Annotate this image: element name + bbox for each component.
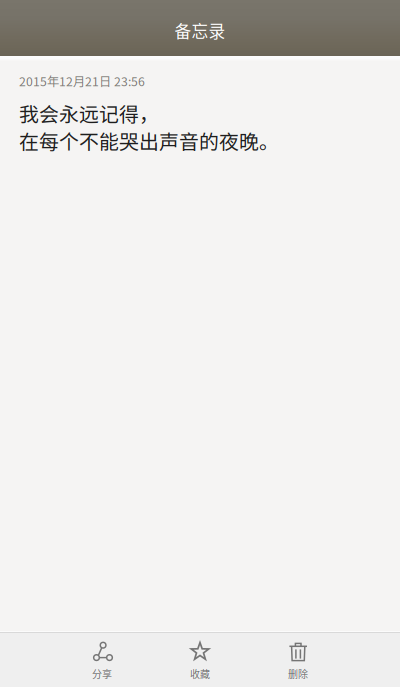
staticText: 我会永远记得， 在每个不能哭出声音的夜晚。 — [19, 99, 279, 155]
staticText: 删除 — [288, 666, 308, 681]
button[interactable]: 分享 — [53, 633, 151, 687]
staticText: 备忘录 — [174, 18, 225, 42]
staticText: 收藏 — [190, 666, 210, 681]
button[interactable]: 删除 — [249, 633, 347, 687]
staticText: 分享 — [92, 666, 112, 681]
staticText: 2015年12月21日 23:56 — [19, 72, 145, 90]
button[interactable]: 收藏 — [151, 633, 249, 687]
